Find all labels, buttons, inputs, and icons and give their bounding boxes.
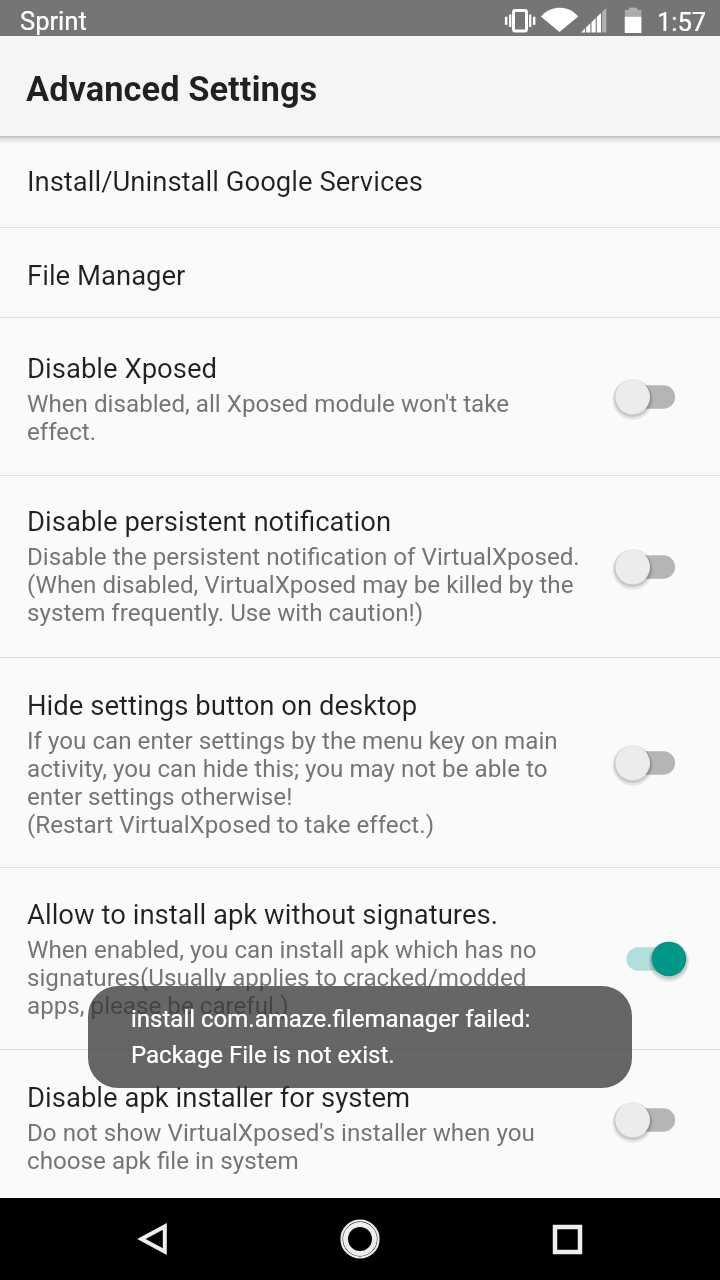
button[interactable]: Toggle <box>617 369 689 425</box>
staticText: Disable the persistent notification of V… <box>27 543 580 627</box>
staticText: install com.amaze.filemanager failed: Pa… <box>131 1005 531 1069</box>
staticText: Install/Uninstall Google Services <box>27 165 424 197</box>
button[interactable]: Disable apk installer for system <box>0 1050 720 1190</box>
button[interactable]: Back <box>114 1198 194 1280</box>
staticText: 1:57 <box>657 7 707 37</box>
button[interactable]: Toggle <box>617 539 689 595</box>
staticText: Allow to install apk without signatures. <box>27 898 498 930</box>
staticText: Advanced Settings <box>26 69 318 109</box>
staticText: Do not show VirtualXposed's installer wh… <box>27 1119 535 1175</box>
staticText: Disable Xposed <box>27 352 218 384</box>
staticText: Hide settings button on desktop <box>27 689 418 721</box>
staticText: When disabled, all Xposed module won't t… <box>27 390 510 446</box>
staticText: File Manager <box>27 259 186 291</box>
button[interactable]: Install/Uninstall Google Services <box>0 136 720 227</box>
button[interactable]: Disable persistent notification <box>0 476 720 657</box>
staticText: Disable apk installer for system <box>27 1081 411 1113</box>
staticText: When enabled, you can install apk which … <box>27 936 537 1020</box>
button[interactable]: Toggle <box>617 735 689 791</box>
button[interactable]: Disable Xposed <box>0 318 720 475</box>
button[interactable]: Allow to install apk without signatures. <box>0 868 720 1049</box>
button[interactable]: Hide settings button on desktop <box>0 658 720 867</box>
button[interactable]: Home <box>320 1198 400 1280</box>
staticText: If you can enter settings by the menu ke… <box>27 727 558 839</box>
button[interactable]: Recents <box>527 1198 607 1280</box>
button[interactable]: Toggle <box>617 931 689 987</box>
button[interactable]: Toggle <box>617 1092 689 1148</box>
staticText: Sprint <box>20 6 87 36</box>
staticText: Disable persistent notification <box>27 505 392 537</box>
button[interactable]: File Manager <box>0 228 720 317</box>
